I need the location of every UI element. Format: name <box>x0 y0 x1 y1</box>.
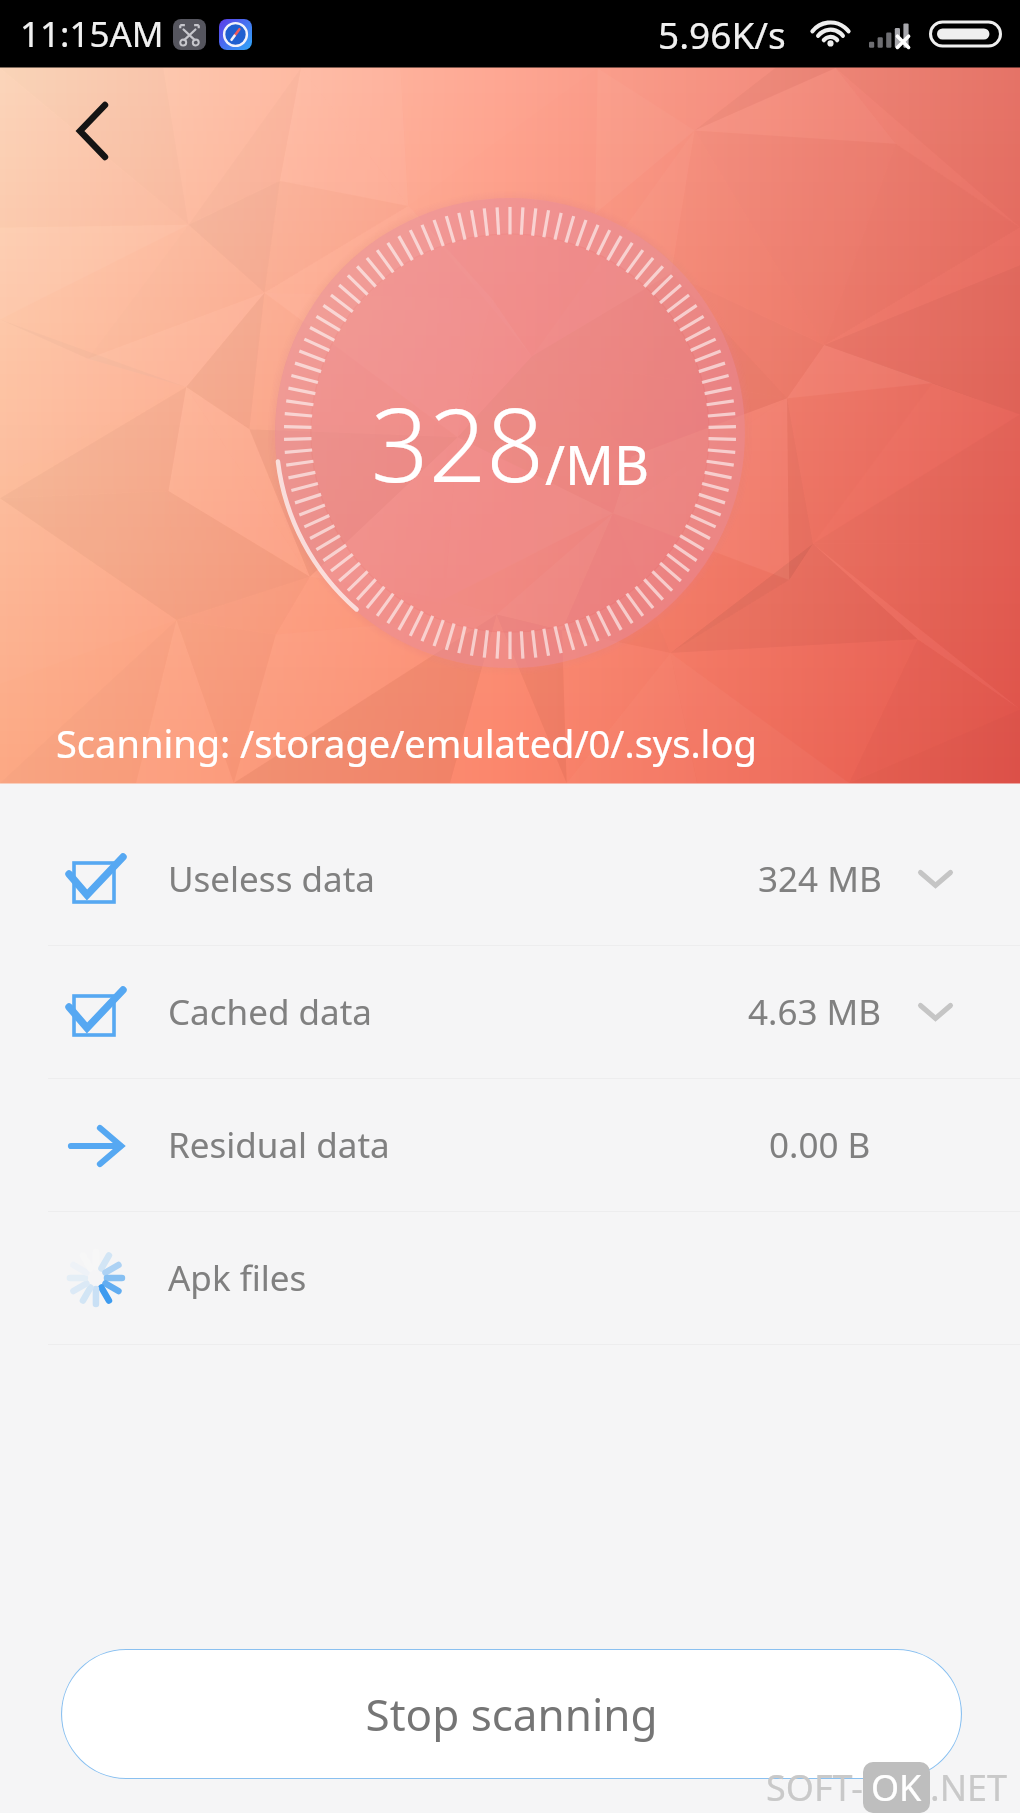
staticText: 11:15AM <box>20 10 164 58</box>
staticText: 324 MB <box>758 855 882 903</box>
button[interactable]: Residual data <box>0 1079 1020 1211</box>
staticText: Scanning: /storage/emulated/0/.sys.log <box>56 717 757 769</box>
staticText: .NET <box>930 1763 1008 1812</box>
staticText: 4.63 MB <box>748 988 882 1036</box>
staticText: /MB <box>545 427 650 501</box>
staticText: Useless data <box>168 855 375 903</box>
staticText: 328 <box>371 374 545 512</box>
button[interactable]: Useless data <box>0 813 1020 945</box>
staticText: Stop scanning <box>365 1684 658 1744</box>
button[interactable]: Back <box>42 81 142 181</box>
staticText: 0.00 B <box>769 1121 871 1169</box>
staticText: Apk files <box>168 1254 307 1302</box>
button[interactable]: Stop scanning <box>61 1649 962 1779</box>
button[interactable]: Cached data <box>0 946 1020 1078</box>
staticText: SOFT- <box>766 1763 863 1812</box>
staticText: Cached data <box>168 988 372 1036</box>
staticText: 5.96K/s <box>658 9 786 59</box>
staticText: OK <box>871 1763 922 1812</box>
button[interactable]: Apk files <box>0 1212 1020 1344</box>
staticText: Residual data <box>168 1121 390 1169</box>
